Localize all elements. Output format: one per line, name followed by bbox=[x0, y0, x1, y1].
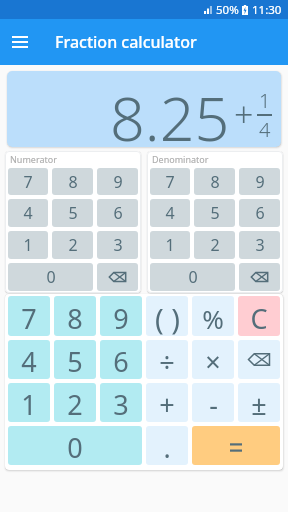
button[interactable]: Open navigation menu bbox=[4, 26, 36, 58]
button[interactable]: 5 bbox=[54, 340, 96, 379]
button[interactable]: 8.25 bbox=[7, 71, 281, 147]
staticText: 0 bbox=[46, 266, 56, 288]
staticText: 50% bbox=[216, 2, 239, 18]
staticText: 8 bbox=[210, 171, 220, 193]
staticText: 11:30 bbox=[252, 2, 282, 18]
button[interactable]: C bbox=[238, 296, 280, 336]
staticText: 4 bbox=[259, 116, 271, 143]
button[interactable]: 9 bbox=[100, 296, 142, 336]
staticText: + bbox=[159, 386, 175, 422]
button[interactable]: + bbox=[146, 383, 188, 422]
button[interactable]: 0 bbox=[8, 263, 93, 291]
button[interactable]: 6 bbox=[239, 199, 280, 227]
button[interactable]: 4 bbox=[8, 199, 48, 227]
button[interactable]: 6 bbox=[97, 199, 138, 227]
button[interactable]: Backspace bbox=[97, 263, 138, 291]
button[interactable]: 4 bbox=[8, 340, 50, 379]
button[interactable]: 4 bbox=[150, 199, 190, 227]
button[interactable]: 3 bbox=[239, 231, 280, 259]
button[interactable]: Backspace bbox=[239, 263, 280, 291]
staticText: 4 bbox=[23, 202, 33, 224]
staticText: 0 bbox=[188, 266, 198, 288]
staticText: ÷ bbox=[159, 343, 175, 379]
button[interactable]: 2 bbox=[54, 383, 96, 422]
staticText: 3 bbox=[113, 386, 129, 422]
staticText: 0 bbox=[67, 429, 83, 465]
staticText: 8.25 bbox=[110, 76, 230, 147]
staticText: 7 bbox=[165, 171, 175, 193]
staticText: Numerator bbox=[10, 153, 57, 165]
button[interactable]: - bbox=[192, 383, 234, 422]
staticText: 4 bbox=[165, 202, 175, 224]
staticText: 5 bbox=[67, 343, 83, 379]
button[interactable]: 1 bbox=[8, 231, 48, 259]
staticText: 2 bbox=[67, 386, 83, 422]
button[interactable]: Backspace bbox=[238, 340, 280, 379]
button[interactable]: ÷ bbox=[146, 340, 188, 379]
staticText: 1 bbox=[165, 234, 175, 256]
button[interactable]: 2 bbox=[52, 231, 93, 259]
staticText: Fraction calculator bbox=[55, 31, 197, 53]
button[interactable]: 7 bbox=[150, 168, 190, 195]
staticText: - bbox=[209, 386, 218, 422]
button[interactable]: 8 bbox=[54, 296, 96, 336]
staticText: 7 bbox=[21, 300, 37, 336]
staticText: 9 bbox=[113, 171, 123, 193]
staticText: ± bbox=[251, 386, 267, 422]
staticText: % bbox=[202, 301, 224, 336]
staticText: 6 bbox=[113, 202, 123, 224]
button[interactable]: 5 bbox=[52, 199, 93, 227]
button[interactable]: 1 bbox=[150, 231, 190, 259]
staticText: . bbox=[163, 429, 171, 465]
staticText: 7 bbox=[23, 171, 33, 193]
staticText: 1 bbox=[21, 386, 37, 422]
staticText: 2 bbox=[210, 234, 220, 256]
staticText: 1 bbox=[23, 234, 33, 256]
button[interactable]: × bbox=[192, 340, 234, 379]
button[interactable]: 3 bbox=[100, 383, 142, 422]
staticText: + bbox=[234, 91, 254, 137]
button[interactable]: 7 bbox=[8, 168, 48, 195]
staticText: Denominator bbox=[152, 153, 209, 165]
staticText: 8 bbox=[67, 300, 83, 336]
staticText: 9 bbox=[255, 171, 265, 193]
staticText: 3 bbox=[113, 234, 123, 256]
staticText: 6 bbox=[113, 343, 129, 379]
button[interactable]: 9 bbox=[239, 168, 280, 195]
button[interactable]: ( ) bbox=[146, 296, 188, 336]
button[interactable]: 1 bbox=[8, 383, 50, 422]
button[interactable]: 3 bbox=[97, 231, 138, 259]
staticText: 8 bbox=[68, 171, 78, 193]
button[interactable]: 9 bbox=[97, 168, 138, 195]
staticText: 5 bbox=[68, 202, 78, 224]
staticText: 3 bbox=[255, 234, 265, 256]
staticText: × bbox=[205, 343, 221, 379]
button[interactable]: 2 bbox=[194, 231, 235, 259]
button[interactable]: 0 bbox=[8, 426, 142, 465]
staticText: ( ) bbox=[155, 299, 180, 336]
button[interactable]: 8 bbox=[194, 168, 235, 195]
staticText: 6 bbox=[255, 202, 265, 224]
button[interactable]: 0 bbox=[150, 263, 235, 291]
staticText: 1 bbox=[259, 87, 271, 114]
staticText: 4 bbox=[21, 343, 37, 379]
button[interactable]: ± bbox=[238, 383, 280, 422]
button[interactable]: . bbox=[146, 426, 188, 465]
button[interactable]: 5 bbox=[194, 199, 235, 227]
staticText: 9 bbox=[113, 300, 129, 336]
button[interactable]: 7 bbox=[8, 296, 50, 336]
button[interactable]: Equals bbox=[192, 426, 280, 465]
staticText: C bbox=[250, 300, 268, 336]
button[interactable]: 8 bbox=[52, 168, 93, 195]
button[interactable]: 6 bbox=[100, 340, 142, 379]
staticText: 5 bbox=[210, 202, 220, 224]
button[interactable]: % bbox=[192, 296, 234, 336]
staticText: 2 bbox=[68, 234, 78, 256]
